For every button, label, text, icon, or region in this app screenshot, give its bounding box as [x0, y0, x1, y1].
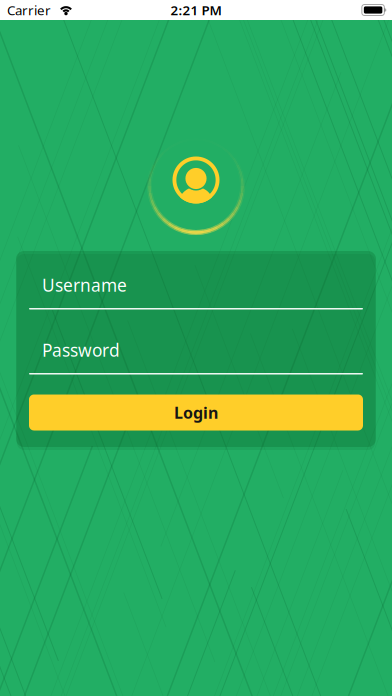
button[interactable]: Login	[29, 394, 363, 430]
staticText: Username	[42, 273, 127, 296]
staticText: Login	[174, 402, 218, 423]
button[interactable]: Username	[29, 273, 363, 309]
staticText: Password	[42, 338, 120, 361]
staticText: 2:21 PM	[170, 1, 221, 19]
button[interactable]: Password	[29, 338, 363, 374]
staticText: Carrier	[7, 1, 51, 19]
